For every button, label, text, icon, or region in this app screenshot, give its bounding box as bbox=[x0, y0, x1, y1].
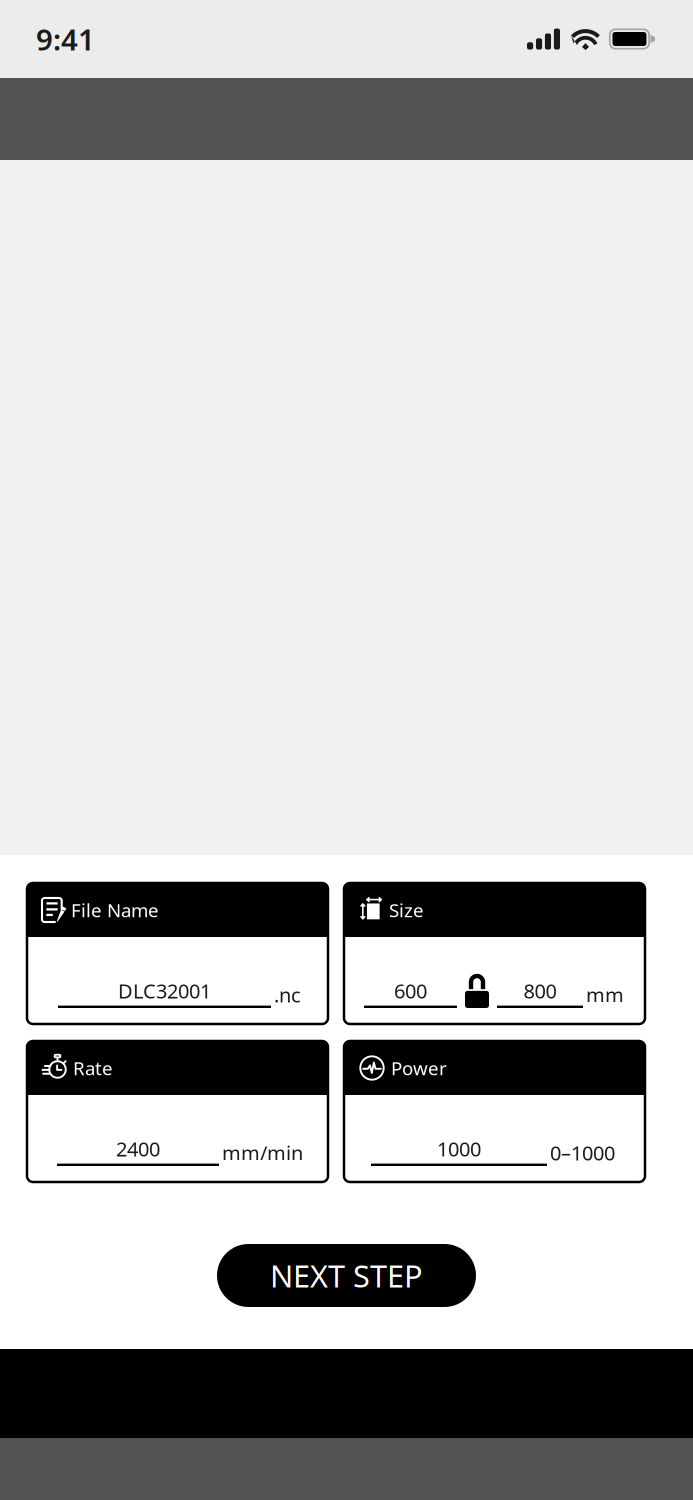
staticText: 9:41 bbox=[36, 19, 95, 58]
button[interactable]: NEXT STEP bbox=[217, 1244, 476, 1307]
staticText: 800 bbox=[523, 977, 556, 1004]
staticText: .nc bbox=[274, 981, 301, 1008]
staticText: DLC32001 bbox=[118, 977, 211, 1004]
staticText: File Name bbox=[71, 898, 159, 922]
staticText: mm/min bbox=[222, 1139, 303, 1166]
staticText: NEXT STEP bbox=[270, 1255, 423, 1296]
staticText: Power bbox=[391, 1056, 447, 1080]
staticText: 600 bbox=[394, 977, 427, 1004]
staticText: 0–1000 bbox=[550, 1139, 615, 1166]
staticText: Rate bbox=[73, 1056, 113, 1080]
staticText: 2400 bbox=[116, 1135, 160, 1162]
staticText: 1000 bbox=[437, 1135, 481, 1162]
staticText: mm bbox=[586, 981, 624, 1008]
staticText: Size bbox=[389, 898, 424, 922]
